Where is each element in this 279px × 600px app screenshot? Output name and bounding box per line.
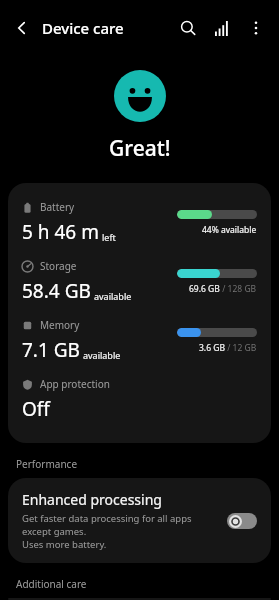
staticText: Device care	[42, 18, 124, 38]
staticText: 44% available	[202, 224, 257, 236]
staticText: 3.6 GB	[199, 342, 225, 354]
staticText: / 12 GB	[225, 342, 257, 354]
button[interactable]: Battery	[8, 193, 271, 252]
button[interactable]: Memory	[8, 311, 271, 370]
staticText: 58.4 GB	[22, 278, 91, 304]
button[interactable]: Enhanced processing toggle	[227, 513, 257, 529]
button[interactable]: Enhanced processing	[8, 478, 271, 563]
staticText: App protection	[40, 377, 110, 391]
staticText: Enhanced processing	[22, 490, 162, 509]
staticText: 69.6 GB	[189, 283, 220, 295]
button[interactable]: Usage statistics	[205, 11, 239, 45]
staticText: Off	[22, 396, 50, 422]
button[interactable]: More options	[239, 11, 273, 45]
staticText: Additional care	[16, 577, 87, 591]
staticText: Battery	[40, 200, 75, 214]
staticText: Storage	[40, 259, 77, 273]
staticText: available	[83, 349, 121, 361]
staticText: available	[94, 290, 132, 302]
staticText: Memory	[40, 318, 80, 332]
staticText: Get faster data processing for all apps …	[22, 512, 219, 551]
staticText: / 128 GB	[220, 283, 257, 295]
staticText: left	[102, 231, 116, 243]
button[interactable]: Storage	[8, 252, 271, 311]
button[interactable]: Search	[171, 11, 205, 45]
button[interactable]: App protection	[8, 370, 271, 429]
staticText: 7.1 GB	[22, 337, 80, 363]
staticText: Performance	[16, 457, 78, 471]
button[interactable]: Back	[6, 12, 38, 44]
staticText: Great!	[109, 134, 171, 163]
staticText: 5 h 46 m	[22, 219, 99, 245]
